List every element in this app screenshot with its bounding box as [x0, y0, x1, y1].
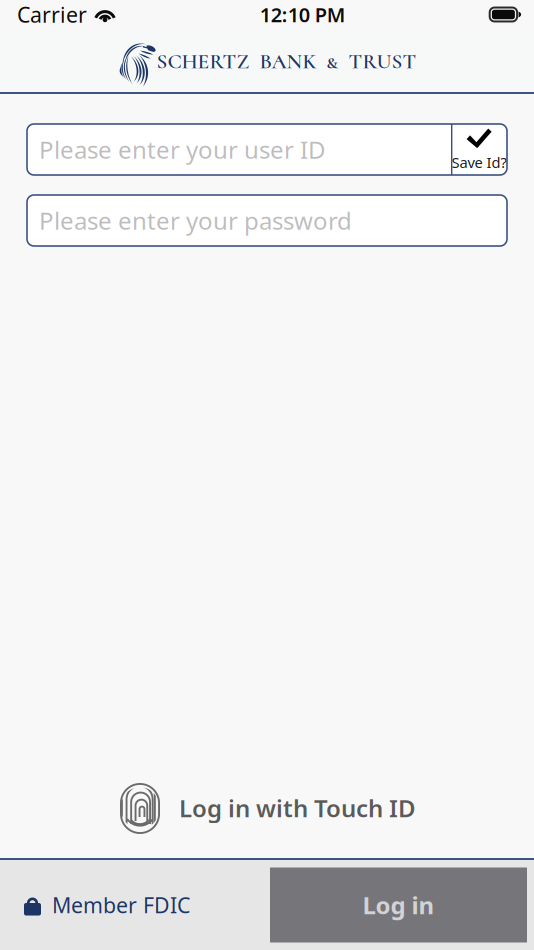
staticText: Please enter your password	[39, 205, 352, 236]
staticText: 12:10 PM	[260, 1, 346, 28]
staticText: Please enter your user ID	[39, 134, 326, 165]
button[interactable]: Save Id?	[451, 124, 507, 175]
staticText: Log in with Touch ID	[179, 792, 416, 824]
staticText: SCHERTZ BANK & TRUST	[156, 49, 416, 74]
button[interactable]: Log in	[270, 867, 527, 942]
staticText: Member FDIC	[52, 891, 190, 919]
staticText: Log in	[362, 889, 434, 921]
staticText: Carrier	[17, 0, 87, 29]
staticText: Save Id?	[451, 152, 506, 172]
button[interactable]: Member FDIC	[0, 877, 206, 933]
button[interactable]: Log in with Touch ID	[108, 778, 426, 838]
